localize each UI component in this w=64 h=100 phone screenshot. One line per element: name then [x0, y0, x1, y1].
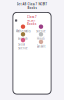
button[interactable]: Sanskrit [33, 40, 49, 48]
staticText: Books [27, 6, 36, 10]
button[interactable]: Science [33, 25, 49, 32]
staticText: Hindi [37, 37, 45, 40]
staticText: Mathematics [15, 29, 30, 33]
staticText: Get AB Class 7 NCERT [16, 2, 47, 6]
button[interactable]: English [15, 33, 31, 40]
button[interactable]: Menu [15, 19, 17, 22]
staticText: Science [36, 29, 46, 33]
staticText: Social Science [18, 43, 28, 50]
staticText: Sanskrit [36, 45, 45, 48]
button[interactable]: Mathematics [15, 25, 31, 32]
button[interactable]: Hindi [33, 33, 49, 40]
staticText: English [18, 37, 28, 40]
button[interactable]: Social Science [15, 40, 31, 48]
staticText: Class 7 NCERT Books [27, 15, 37, 26]
